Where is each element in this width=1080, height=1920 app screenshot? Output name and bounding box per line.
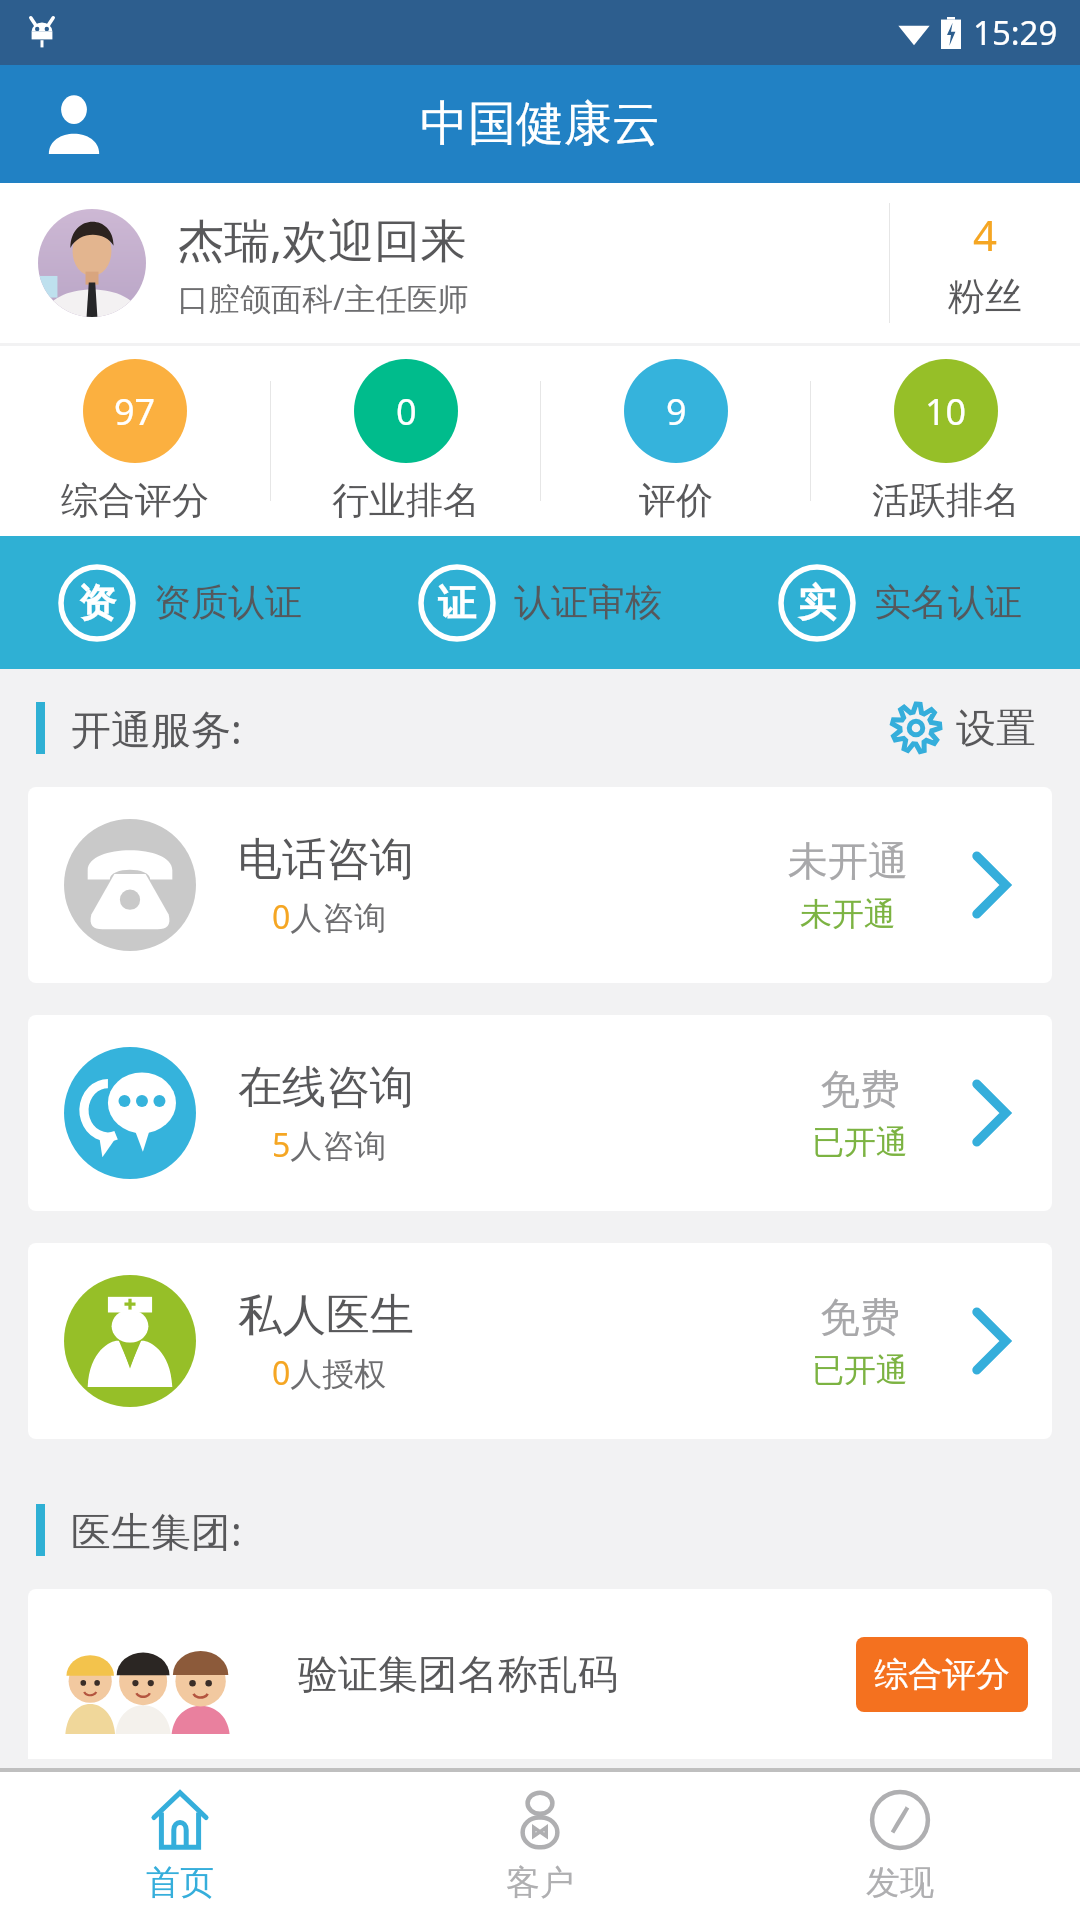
button[interactable]: 电话咨询 [28,787,1052,983]
button[interactable]: 97 [0,346,270,536]
button[interactable]: 4 [890,206,1080,320]
staticText: 0人咨询 [272,895,387,939]
button[interactable]: Profile [38,88,110,160]
staticText: 杰瑞,欢迎回来 [178,208,467,271]
staticText: 验证集团名称乱码 [298,1649,618,1699]
staticText: 行业排名 [332,477,480,524]
button[interactable]: 验证集团名称乱码 [28,1589,1052,1759]
staticText: 中国健康云 [420,94,660,154]
staticText: 15:29 [973,10,1058,55]
button[interactable]: 实 [720,536,1080,669]
button[interactable]: 发现 [720,1772,1080,1920]
staticText: 资 [78,579,116,627]
staticText: 已开通 [812,1122,908,1162]
button[interactable]: 杰瑞,欢迎回来 [0,183,1080,343]
button[interactable]: 证 [360,536,720,669]
button[interactable]: 综合评分 [874,1653,1010,1696]
staticText: 10 [925,387,967,436]
staticText: 首页 [146,1861,214,1904]
button[interactable]: 设置 [882,694,1044,762]
button[interactable]: 在线咨询 [28,1015,1052,1211]
staticText: 实 [798,579,836,627]
staticText: 实名认证 [874,579,1022,626]
staticText: 开通服务: [71,701,242,756]
staticText: 证 [438,579,476,627]
staticText: 综合评分 [874,1653,1010,1696]
staticText: 评价 [639,477,713,524]
staticText: 0人授权 [272,1351,387,1395]
staticText: 在线咨询 [238,1060,414,1115]
button[interactable]: 资 [0,536,360,669]
staticText: 私人医生 [238,1288,414,1343]
button[interactable]: 客户 [360,1772,720,1920]
staticText: 发现 [866,1861,934,1904]
staticText: 未开通 [800,894,896,934]
staticText: 医生集团: [71,1503,242,1558]
staticText: 免费 [820,1064,900,1114]
staticText: 口腔颌面科/主任医师 [178,277,469,319]
staticText: 97 [114,387,156,436]
staticText: 9 [666,387,687,436]
staticText: 电话咨询 [238,832,414,887]
button[interactable]: 首页 [0,1772,360,1920]
staticText: 免费 [820,1292,900,1342]
staticText: 5人咨询 [272,1123,387,1167]
staticText: 粉丝 [948,273,1022,320]
button[interactable]: 0 [271,346,540,536]
staticText: 活跃排名 [872,477,1020,524]
staticText: 客户 [506,1861,574,1904]
button[interactable]: 10 [811,346,1080,536]
staticText: 0 [396,387,417,436]
button[interactable]: 9 [541,346,810,536]
staticText: 已开通 [812,1350,908,1390]
staticText: 设置 [956,703,1036,753]
staticText: 未开通 [788,836,908,886]
staticText: 4 [973,206,998,263]
button[interactable]: 私人医生 [28,1243,1052,1439]
staticText: 资质认证 [154,579,302,626]
staticText: 综合评分 [61,477,209,524]
staticText: 认证审核 [514,579,662,626]
